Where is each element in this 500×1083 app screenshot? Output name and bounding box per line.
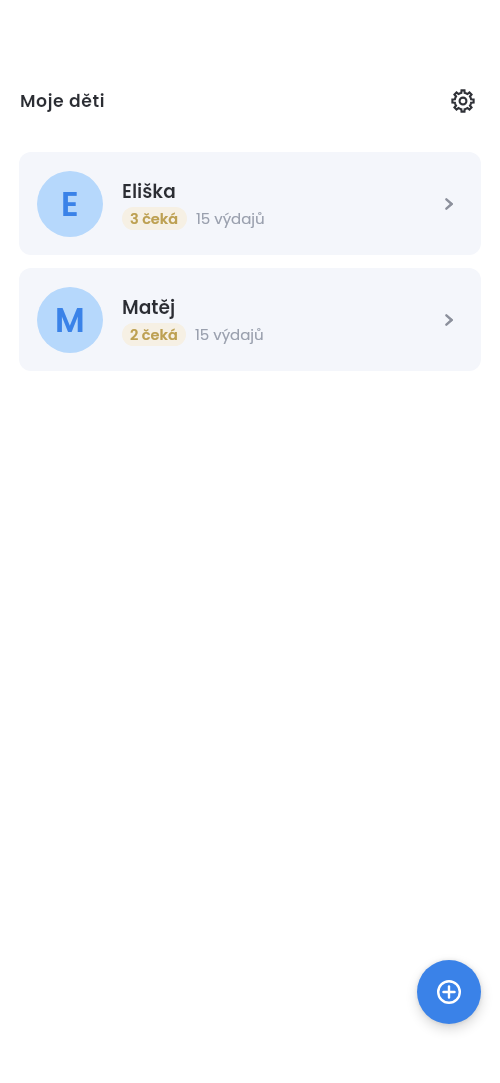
staticText: Matěj [122,294,176,320]
button[interactable]: E [19,152,481,255]
staticText: 15 výdajů [196,208,265,229]
staticText: Eliška [122,178,176,204]
button[interactable]: M [19,268,481,371]
staticText: M [55,297,85,343]
button[interactable]: Add child [417,960,481,1024]
button[interactable]: Settings [444,82,482,120]
staticText: E [61,181,79,227]
staticText: 3 čeká [130,209,179,229]
staticText: Moje děti [20,89,106,113]
staticText: 15 výdajů [195,324,264,345]
staticText: 2 čeká [130,325,178,345]
